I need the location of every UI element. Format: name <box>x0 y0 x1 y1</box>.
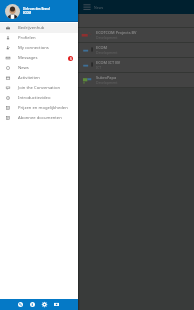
staticText: ECOTCOM Projects BV <box>96 30 137 35</box>
staticText: ECOM ICT BV <box>96 60 121 65</box>
button[interactable]: My connections <box>0 43 78 53</box>
staticText: News <box>18 65 73 71</box>
staticText: 6 <box>70 57 72 61</box>
button[interactable]: ECOM <box>78 43 194 57</box>
staticText: Messages <box>18 55 68 61</box>
button[interactable]: ECOM ICT BV <box>78 58 194 72</box>
button[interactable]: Twitter <box>15 299 26 310</box>
staticText: News <box>94 5 104 10</box>
button[interactable]: YouTube <box>51 299 62 310</box>
button[interactable]: SubroPapa <box>78 73 194 87</box>
button[interactable]: News <box>0 63 78 73</box>
staticText: Introductievideo <box>18 95 73 101</box>
staticText: Dirk van den Brand <box>23 7 50 11</box>
staticText: Development <box>96 35 118 40</box>
button[interactable]: Join the Conversation <box>0 83 78 93</box>
staticText: Development <box>96 80 118 85</box>
button[interactable]: Bedrijvenhub <box>0 23 78 33</box>
button[interactable]: Introductievideo <box>0 93 78 103</box>
staticText: Bedrijvenhub <box>18 25 73 31</box>
button[interactable]: Abonnee documenten <box>0 113 78 123</box>
button[interactable]: Settings <box>39 299 50 310</box>
staticText: Profielen <box>18 35 73 41</box>
button[interactable]: Facebook <box>27 299 38 310</box>
staticText: Abonnee documenten <box>18 115 73 121</box>
staticText: Activiteiten <box>18 75 73 81</box>
staticText: ECOM <box>96 45 108 50</box>
staticText: Development <box>96 50 118 55</box>
staticText: ECOM <box>23 11 32 15</box>
staticText: Join the Conversation <box>18 85 73 91</box>
staticText: ICT <box>96 65 102 70</box>
button[interactable]: Profielen <box>0 33 78 43</box>
button[interactable]: ECOTCOM Projects BV <box>78 28 194 42</box>
button[interactable]: Messages <box>0 53 78 63</box>
button[interactable]: Open navigation menu <box>82 2 92 12</box>
staticText: My connections <box>18 45 73 51</box>
staticText: Prijzen en mogelijkheden <box>18 105 73 111</box>
staticText: SubroPapa <box>96 75 117 80</box>
button[interactable]: Activiteiten <box>0 73 78 83</box>
button[interactable]: Prijzen en mogelijkheden <box>0 103 78 113</box>
